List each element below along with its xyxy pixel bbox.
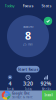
button[interactable]: Google One <box>0 90 56 100</box>
staticText: 8 <box>25 28 31 43</box>
button[interactable]: Session complete <box>43 16 52 25</box>
button[interactable]: Today <box>4 2 15 9</box>
staticText: Streak <box>6 87 13 91</box>
staticText: 92% <box>40 80 51 87</box>
staticText: Today <box>24 87 31 91</box>
staticText: Google One <box>12 92 30 95</box>
button[interactable]: 4 <box>1 75 19 91</box>
staticText: Stats <box>41 3 51 8</box>
button[interactable]: Start focus <box>16 66 39 72</box>
staticText: 3:20 <box>23 80 33 87</box>
staticText: Install <box>44 93 53 97</box>
staticText: Weekly <box>41 87 50 91</box>
button[interactable]: 92% <box>37 75 55 91</box>
staticText: SESSIONS <box>23 25 33 28</box>
staticText: Start focus <box>17 66 38 72</box>
staticText: Focus <box>22 3 33 8</box>
staticText: Today <box>4 3 14 8</box>
staticText: 25 min <box>23 43 33 46</box>
staticText: Storage & more <box>12 95 33 99</box>
button[interactable]: Stats <box>41 2 52 9</box>
button[interactable]: 3:20 <box>19 75 37 91</box>
staticText: 4 <box>8 80 11 87</box>
